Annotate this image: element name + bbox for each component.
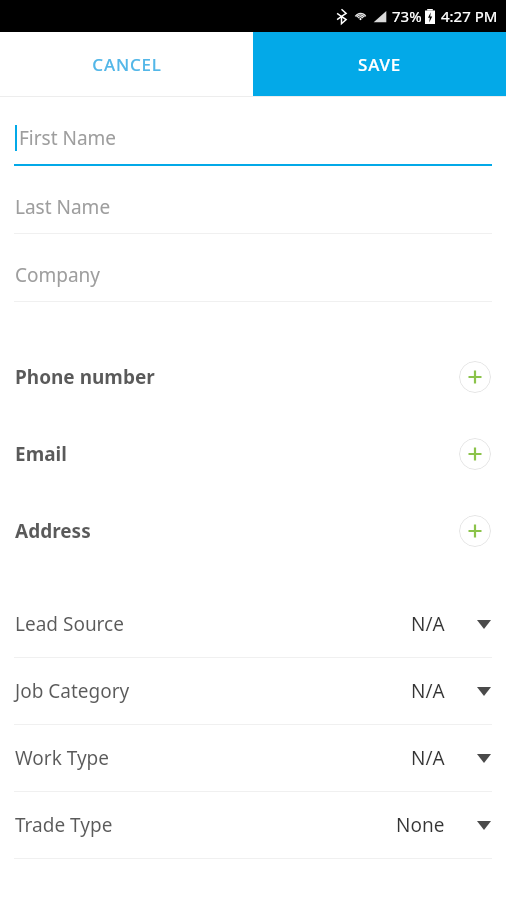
button[interactable]: Work Type [0,725,506,792]
button[interactable]: First Name [0,111,506,180]
staticText: SAVE [358,53,401,76]
staticText: Last Name [15,194,111,220]
button[interactable]: Phone number [0,338,506,415]
button[interactable]: SAVE [253,32,506,96]
button[interactable]: CANCEL [0,32,253,96]
staticText: None [396,812,445,838]
button[interactable]: Add Email [459,438,491,470]
button[interactable]: Add Phone number [459,361,491,393]
button[interactable]: Add Address [459,515,491,547]
staticText: Company [15,262,101,288]
staticText: Job Category [15,678,411,704]
staticText: N/A [411,678,445,704]
staticText: Trade Type [15,812,396,838]
button[interactable]: Trade Type [0,792,506,859]
staticText: First Name [19,125,117,151]
button[interactable]: Address [0,492,506,569]
staticText: Work Type [15,745,411,771]
staticText: 4:27 PM [441,6,498,26]
staticText: Lead Source [15,611,411,637]
button[interactable]: Email [0,415,506,492]
staticText: N/A [411,611,445,637]
staticText: Address [15,518,91,544]
button[interactable]: Lead Source [0,591,506,658]
staticText: N/A [411,745,445,771]
staticText: Phone number [15,364,155,390]
staticText: Email [15,441,67,467]
button[interactable]: Job Category [0,658,506,725]
button[interactable]: Last Name [0,180,506,248]
staticText: CANCEL [92,53,162,76]
staticText: 73% [392,6,422,26]
button[interactable]: Company [0,248,506,316]
